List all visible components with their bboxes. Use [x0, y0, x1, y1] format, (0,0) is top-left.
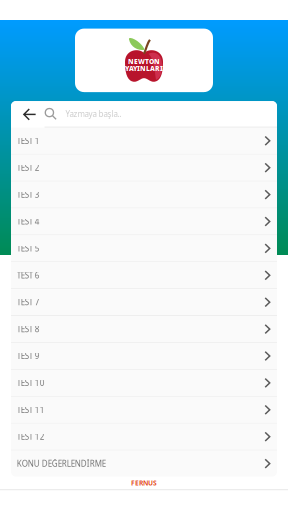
staticText: TEST 7 [17, 297, 40, 307]
staticText: Yazmaya başla.. [65, 109, 121, 119]
button[interactable]: TEST 3 [11, 181, 277, 208]
button[interactable]: Search [44, 101, 277, 128]
staticText: TEST 4 [17, 216, 40, 227]
button[interactable]: TEST 12 [11, 424, 277, 450]
staticText: TEST 6 [17, 270, 40, 281]
button[interactable]: KONU DEĞERLENDİRME [11, 450, 277, 477]
button[interactable]: Back [19, 101, 40, 128]
button[interactable]: TEST 2 [11, 155, 277, 181]
staticText: TEST 12 [17, 431, 45, 442]
button[interactable]: TEST 1 [11, 128, 277, 154]
staticText: TEST 8 [17, 324, 40, 334]
staticText: TEST 2 [17, 162, 40, 173]
staticText: TEST 10 [17, 378, 45, 388]
staticText: KONU DEĞERLENDİRME [17, 458, 106, 469]
button[interactable]: TEST 8 [11, 316, 277, 342]
staticText: TEST 1 [17, 135, 40, 146]
button[interactable]: TEST 6 [11, 262, 277, 288]
button[interactable]: TEST 11 [11, 397, 277, 423]
staticText: TEST 5 [17, 243, 40, 254]
button[interactable]: TEST 10 [11, 370, 277, 396]
staticText: YAYINLARI [125, 64, 163, 73]
button[interactable]: TEST 9 [11, 343, 277, 369]
staticText: FERNUS [131, 478, 157, 487]
staticText: TEST 11 [17, 404, 45, 415]
button[interactable]: Newton Yayınları [75, 29, 213, 92]
button[interactable]: TEST 5 [11, 235, 277, 261]
staticText: NEWTON [128, 57, 160, 66]
button[interactable]: TEST 7 [11, 289, 277, 315]
staticText: TEST 9 [17, 351, 40, 361]
button[interactable]: TEST 4 [11, 208, 277, 235]
staticText: TEST 3 [17, 189, 40, 200]
